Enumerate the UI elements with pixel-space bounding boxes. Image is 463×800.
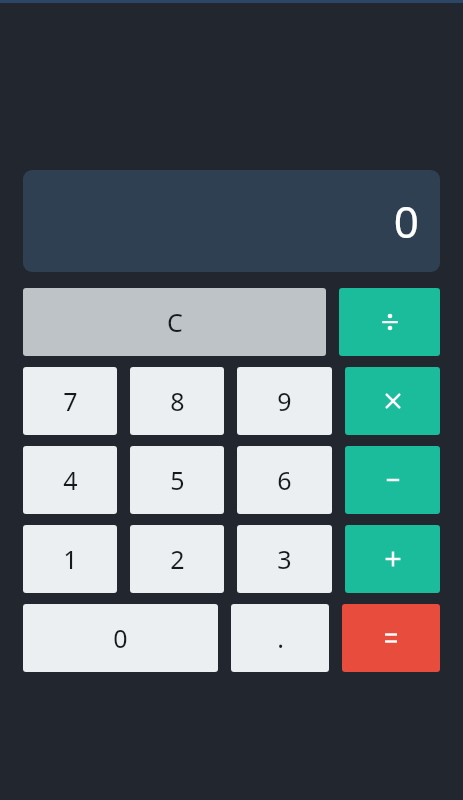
- button[interactable]: 7: [23, 367, 117, 435]
- staticText: 3: [277, 542, 292, 576]
- button[interactable]: 2: [130, 525, 224, 593]
- button[interactable]: 9: [237, 367, 332, 435]
- staticText: 0: [113, 621, 128, 655]
- staticText: 0: [393, 191, 419, 251]
- button[interactable]: 4: [23, 446, 117, 514]
- staticText: 9: [277, 384, 292, 418]
- staticText: 1: [63, 542, 78, 576]
- staticText: 5: [170, 463, 185, 497]
- button[interactable]: 3: [237, 525, 332, 593]
- button[interactable]: .: [231, 604, 329, 672]
- staticText: C: [167, 305, 183, 339]
- button[interactable]: 1: [23, 525, 117, 593]
- button[interactable]: Multiply: [345, 367, 440, 435]
- staticText: 6: [277, 463, 292, 497]
- button[interactable]: 0: [23, 604, 218, 672]
- staticText: 8: [170, 384, 185, 418]
- button[interactable]: 5: [130, 446, 224, 514]
- button[interactable]: C: [23, 288, 326, 356]
- button[interactable]: 6: [237, 446, 332, 514]
- button[interactable]: Equals: [342, 604, 440, 672]
- button[interactable]: Subtract: [345, 446, 440, 514]
- button[interactable]: Divide: [339, 288, 440, 356]
- button[interactable]: 0: [23, 170, 440, 272]
- staticText: .: [277, 621, 284, 655]
- staticText: 4: [63, 463, 78, 497]
- staticText: 2: [170, 542, 185, 576]
- button[interactable]: Add: [345, 525, 440, 593]
- button[interactable]: 8: [130, 367, 224, 435]
- staticText: 7: [63, 384, 78, 418]
